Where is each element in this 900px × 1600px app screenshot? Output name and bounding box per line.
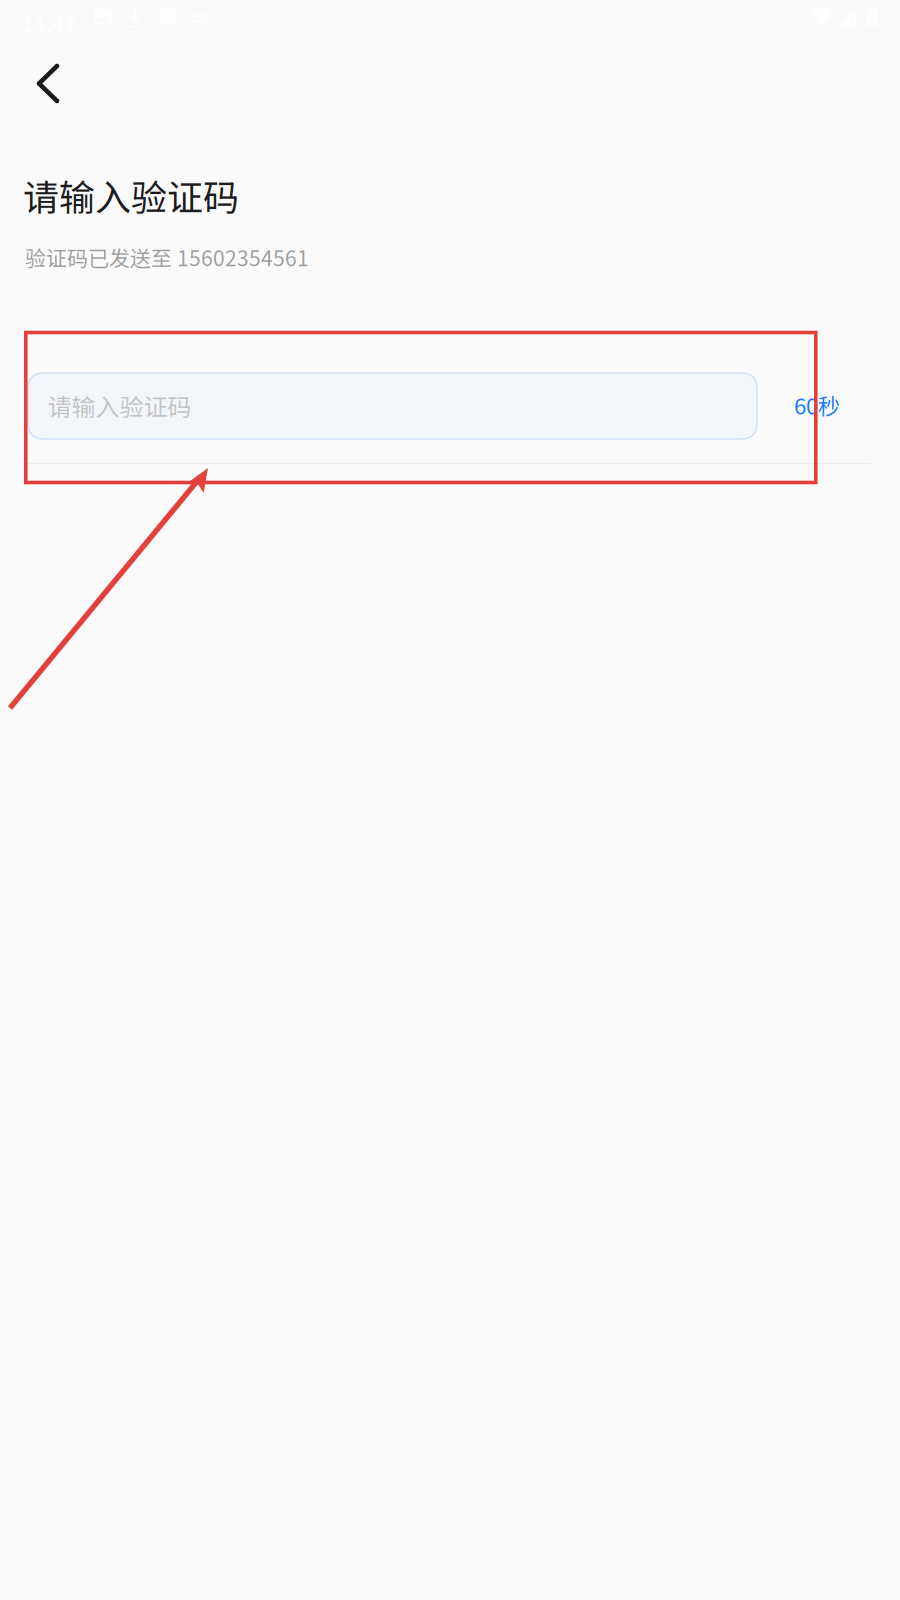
- staticText: 请输入验证码: [47, 388, 191, 423]
- staticText: 60秒: [794, 389, 840, 421]
- staticText: 验证码已发送至 15602354561: [25, 242, 309, 272]
- button[interactable]: 请输入验证码: [28, 373, 757, 439]
- staticText: 请输入验证码: [23, 169, 239, 221]
- button[interactable]: Back: [0, 0, 93, 119]
- button[interactable]: 60秒: [780, 372, 854, 438]
